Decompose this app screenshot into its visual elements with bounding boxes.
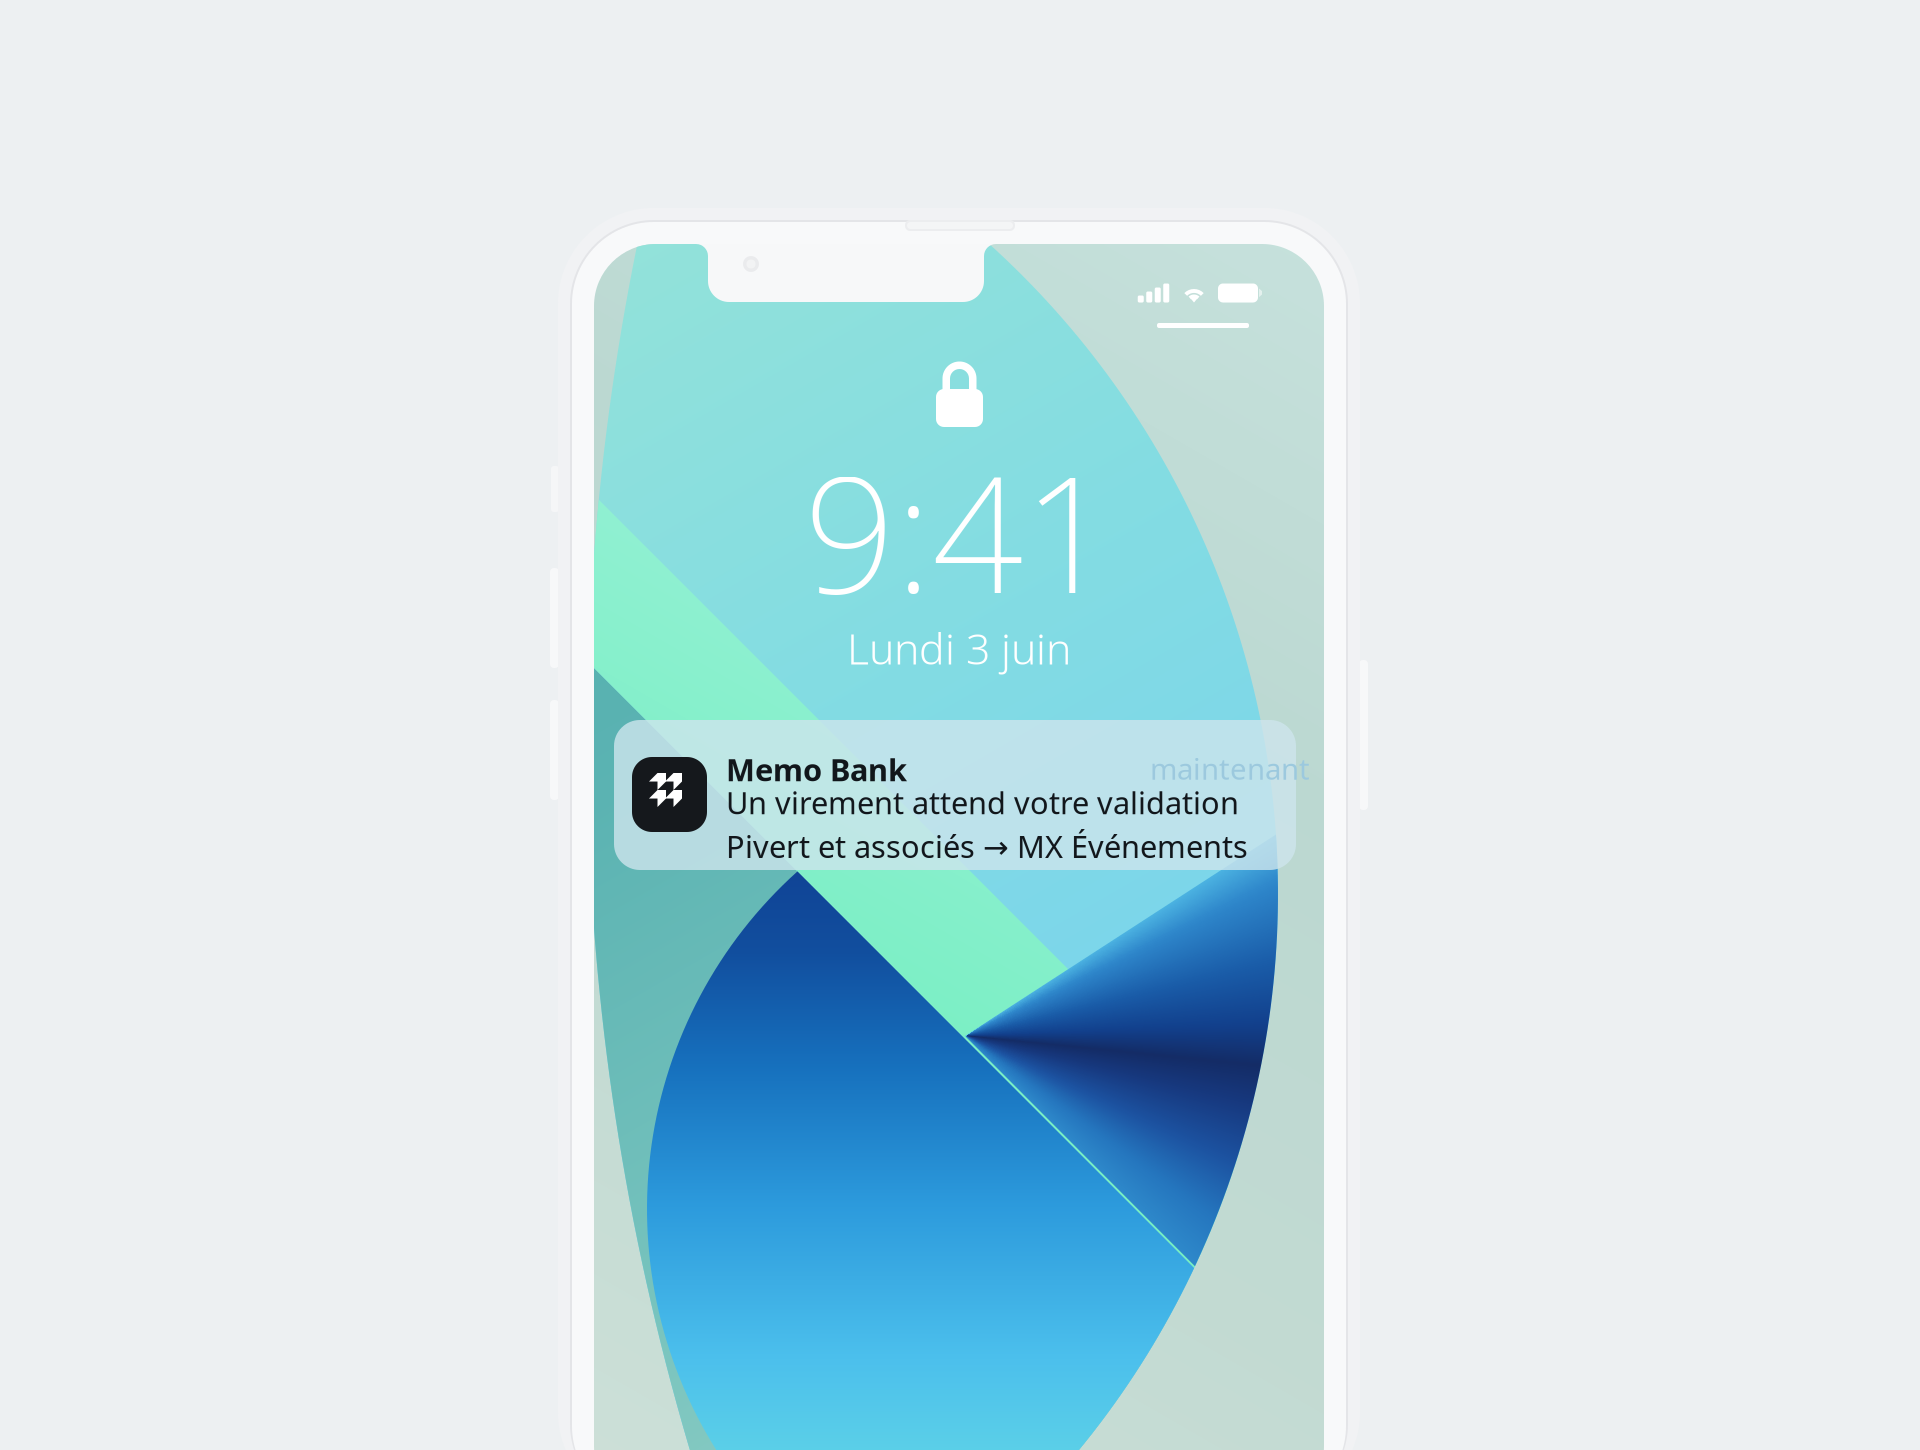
- staticText: Un virement attend votre validation: [726, 782, 1239, 823]
- staticText: Memo Bank: [726, 749, 907, 790]
- button[interactable]: Memo Bank: [614, 720, 1296, 870]
- staticText: maintenant: [1150, 749, 1310, 788]
- staticText: Pivert et associés → MX Événements: [726, 826, 1248, 866]
- staticText: Lundi 3 juin: [847, 620, 1071, 676]
- staticText: 9:41: [804, 425, 1114, 637]
